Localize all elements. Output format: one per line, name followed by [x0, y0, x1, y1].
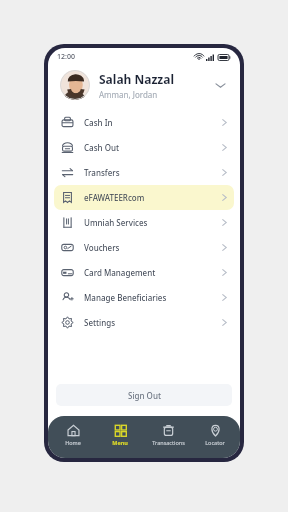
button[interactable]: Menu: [97, 422, 143, 448]
button[interactable]: eFAWATEERcom: [54, 185, 234, 210]
button[interactable]: Transactions: [145, 422, 191, 448]
button[interactable]: Locator: [192, 422, 238, 448]
staticText: 12:00: [57, 52, 75, 62]
staticText: Transfers: [84, 167, 222, 178]
staticText: Home: [65, 439, 81, 446]
staticText: Cash Out: [84, 142, 222, 153]
staticText: Umniah Services: [84, 217, 222, 228]
button[interactable]: Cash In: [54, 110, 234, 135]
staticText: Locator: [205, 439, 225, 446]
button[interactable]: Umniah Services: [54, 210, 234, 235]
staticText: Sign Out: [128, 390, 161, 401]
button[interactable]: Salah Nazzal: [48, 66, 240, 104]
staticText: Settings: [84, 317, 222, 328]
staticText: Card Management: [84, 267, 222, 278]
button[interactable]: Vouchers: [54, 235, 234, 260]
staticText: Transactions: [152, 439, 185, 446]
staticText: Cash In: [84, 117, 222, 128]
button[interactable]: Sign Out: [56, 384, 232, 406]
button[interactable]: Cash Out: [54, 135, 234, 160]
staticText: Vouchers: [84, 242, 222, 253]
button[interactable]: Transfers: [54, 160, 234, 185]
staticText: Menu: [112, 439, 128, 446]
other: Expand profile: [212, 77, 228, 93]
staticText: eFAWATEERcom: [84, 192, 222, 203]
button[interactable]: Settings: [54, 310, 234, 335]
staticText: Salah Nazzal: [99, 71, 175, 87]
staticText: Amman, Jordan: [99, 89, 158, 100]
button[interactable]: Manage Beneficiaries: [54, 285, 234, 310]
button[interactable]: Card Management: [54, 260, 234, 285]
staticText: Manage Beneficiaries: [84, 292, 222, 303]
button[interactable]: Home: [50, 422, 96, 448]
